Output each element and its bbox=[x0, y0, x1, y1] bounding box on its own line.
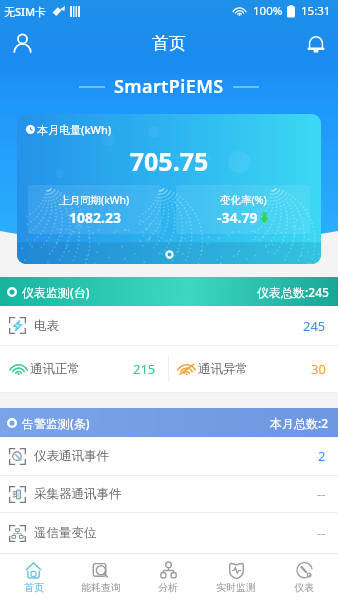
staticText: 能耗查询 bbox=[81, 581, 121, 594]
button[interactable]: 通讯正常 bbox=[0, 346, 168, 392]
button[interactable]: 仪表通讯事件 bbox=[0, 437, 338, 475]
staticText: 705.75 bbox=[17, 144, 321, 178]
staticText: 1082.23 bbox=[69, 208, 121, 227]
staticText: 分析 bbox=[158, 581, 178, 594]
button[interactable]: 电表 bbox=[0, 306, 338, 345]
staticText: 本月总数:2 bbox=[270, 415, 329, 431]
button[interactable]: 分析 bbox=[134, 554, 202, 600]
staticText: -- bbox=[317, 524, 326, 542]
staticText: 采集器通讯事件 bbox=[34, 486, 122, 502]
staticText: 遥信量变位 bbox=[34, 525, 97, 541]
button[interactable]: Account bbox=[0, 22, 44, 65]
staticText: 仪表 bbox=[294, 581, 314, 594]
button[interactable]: 本月电量(kWh) bbox=[17, 114, 321, 264]
button[interactable]: 遥信量变位 bbox=[0, 513, 338, 553]
staticText: 仪表监测(台) bbox=[22, 284, 90, 300]
button[interactable]: 采集器通讯事件 bbox=[0, 476, 338, 512]
button[interactable]: 通讯异常 bbox=[169, 346, 338, 392]
button[interactable]: 实时监测 bbox=[202, 554, 270, 600]
button[interactable]: 仪表 bbox=[270, 554, 338, 600]
staticText: 30 bbox=[311, 360, 326, 378]
staticText: SmartPiEMS bbox=[114, 74, 224, 99]
staticText: -34.79 bbox=[217, 208, 258, 227]
staticText: 变化率(%) bbox=[220, 193, 267, 207]
staticText: 15:31 bbox=[301, 3, 331, 19]
staticText: 首页 bbox=[152, 33, 186, 54]
staticText: 仪表总数:245 bbox=[257, 284, 329, 300]
staticText: 首页 bbox=[24, 581, 44, 594]
staticText: 2 bbox=[318, 447, 326, 465]
staticText: 通讯正常 bbox=[30, 361, 80, 377]
staticText: 告警监测(条) bbox=[22, 415, 90, 431]
staticText: 无SIM卡 bbox=[4, 4, 47, 19]
button[interactable]: Notifications bbox=[294, 22, 338, 65]
staticText: 电表 bbox=[34, 318, 59, 334]
staticText: 245 bbox=[303, 317, 326, 335]
staticText: 实时监测 bbox=[216, 581, 256, 594]
button[interactable]: 首页 bbox=[0, 554, 67, 600]
staticText: 仪表通讯事件 bbox=[34, 448, 109, 464]
button[interactable]: 能耗查询 bbox=[67, 554, 134, 600]
staticText: 本月电量(kWh) bbox=[37, 122, 112, 137]
staticText: 215 bbox=[133, 360, 156, 378]
staticText: 100% bbox=[253, 3, 283, 19]
staticText: -- bbox=[317, 485, 326, 503]
staticText: 通讯异常 bbox=[198, 361, 248, 377]
staticText: 上月同期(kWh) bbox=[59, 193, 130, 207]
